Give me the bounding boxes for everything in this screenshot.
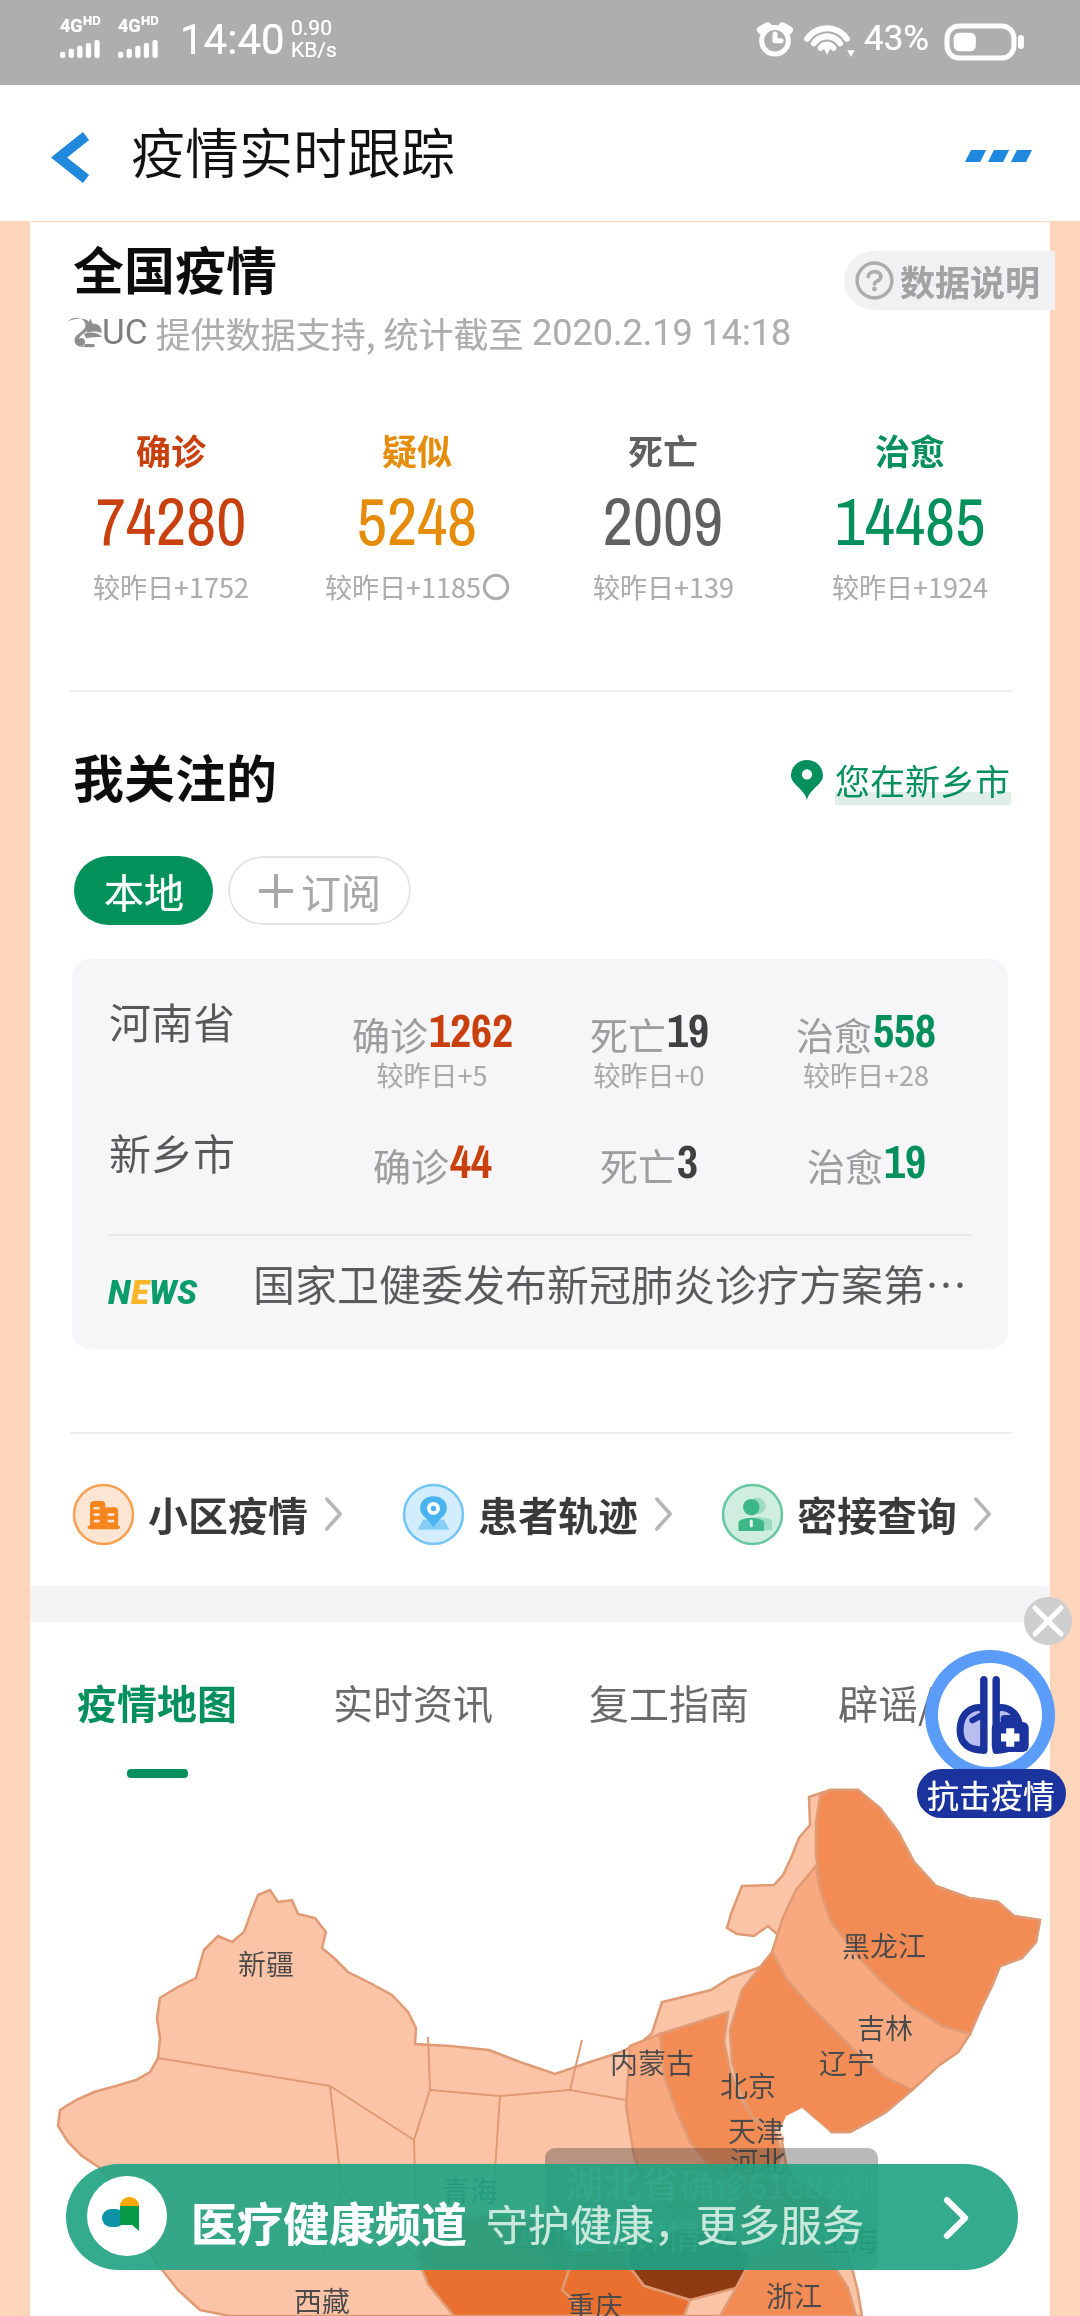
staticText: 较昨日+0 xyxy=(539,1055,759,1094)
staticText: 订阅 xyxy=(301,862,381,920)
staticText: HD xyxy=(141,13,159,28)
button[interactable]: 患者轨迹 xyxy=(403,1483,672,1545)
staticText: 死亡 xyxy=(590,1006,667,1061)
staticText: 74280 xyxy=(51,477,291,566)
staticText: 确诊 xyxy=(51,424,291,475)
staticText: 治愈 xyxy=(790,424,1030,475)
staticText: 确诊 xyxy=(352,1006,429,1061)
staticText: 1262 xyxy=(429,999,513,1061)
staticText: 提供数据支持, 统计截至 xyxy=(148,307,532,358)
staticText: 14:40 xyxy=(180,15,285,64)
staticText: 疑似 xyxy=(297,424,537,475)
staticText: 抗击疫情 xyxy=(927,1771,1056,1817)
staticText: 较昨日+28 xyxy=(756,1055,976,1094)
staticText: 浙江 xyxy=(714,2275,874,2316)
staticText: 0.90 xyxy=(291,16,332,41)
staticText: 44 xyxy=(450,1130,492,1192)
button[interactable]: 实时资讯 xyxy=(333,1673,493,1731)
staticText: 19 xyxy=(884,1130,926,1192)
staticText: N xyxy=(108,1273,131,1312)
staticText: 河北 xyxy=(678,2140,838,2181)
staticText: 4G xyxy=(60,15,83,36)
staticText: 14485 xyxy=(790,477,1030,566)
staticText: 小区疫情 xyxy=(148,1485,308,1543)
staticText: 国家卫健委发布新冠肺炎诊疗方案第… xyxy=(253,1252,1008,1313)
staticText: 上海 xyxy=(770,2220,930,2261)
staticText: 较昨日+5 xyxy=(322,1055,542,1094)
staticText: 天津 xyxy=(676,2110,836,2151)
staticText: 内蒙古 xyxy=(572,2042,732,2083)
staticText: 558 xyxy=(873,999,936,1061)
staticText: 查看详情 xyxy=(565,2210,701,2259)
staticText: 辟谣/求 xyxy=(838,1673,974,1731)
staticText: 辽宁 xyxy=(767,2042,927,2083)
button[interactable]: 复工指南 xyxy=(589,1673,749,1731)
button[interactable]: 小区疫情 xyxy=(73,1483,342,1545)
button[interactable]: 订阅 xyxy=(228,856,411,925)
staticText: 疫情实时跟踪 xyxy=(131,111,455,189)
staticText: 疫情地图 xyxy=(77,1673,237,1731)
button[interactable]: 河南省 xyxy=(72,959,1008,1349)
staticText: W xyxy=(149,1273,177,1312)
staticText: 全国疫情 xyxy=(73,231,278,305)
staticText: 复工指南 xyxy=(589,1673,749,1731)
staticText: 河南省 xyxy=(109,990,236,1051)
staticText: 我关注的 xyxy=(73,739,278,813)
staticText: 较昨日+1924 xyxy=(832,567,988,606)
staticText: UC xyxy=(102,312,148,353)
staticText: 新疆 xyxy=(186,1943,346,1984)
button[interactable]: 您在新乡市 xyxy=(791,754,1011,805)
staticText: 治愈 xyxy=(807,1137,884,1192)
button[interactable]: 密接查询 xyxy=(722,1483,991,1545)
staticText: 较昨日+1185 xyxy=(325,567,481,606)
staticText: 患者轨迹 xyxy=(478,1485,638,1543)
button[interactable]: 数据说明 xyxy=(844,251,1055,310)
staticText: 较昨日+1752 xyxy=(93,567,249,606)
staticText: 北京 xyxy=(668,2065,828,2106)
staticText: 确诊61682例 xyxy=(680,2160,877,2209)
staticText: 密接查询 xyxy=(797,1485,957,1543)
button[interactable]: 医疗健康频道 xyxy=(66,2164,1018,2270)
staticText: 守护健康，更多服务 xyxy=(486,2192,865,2253)
staticText: 青海 xyxy=(390,2170,550,2211)
staticText: 黑龙江 xyxy=(804,1925,964,1966)
staticText: E xyxy=(131,1273,149,1312)
staticText: 19 xyxy=(667,999,709,1061)
staticText: 数据说明 xyxy=(900,255,1041,306)
staticText: S xyxy=(177,1273,198,1312)
staticText: 死亡 xyxy=(543,424,783,475)
staticText: 重庆 xyxy=(515,2285,675,2316)
staticText: 吉林 xyxy=(805,2007,965,2048)
staticText: HD xyxy=(83,13,101,28)
staticText: 较昨日+139 xyxy=(593,567,734,606)
staticText: 本地 xyxy=(104,862,184,920)
button[interactable]: More options xyxy=(953,113,1039,199)
staticText: 湖北 xyxy=(630,2225,790,2266)
button[interactable]: 抗击疫情 xyxy=(917,1650,1067,1818)
staticText: 5248 xyxy=(297,477,537,566)
staticText: 2009 xyxy=(543,477,783,566)
staticText: 新乡市 xyxy=(109,1121,236,1182)
staticText: 四川 xyxy=(458,2217,618,2258)
staticText: 43% xyxy=(864,18,929,59)
button[interactable]: 疫情地图 xyxy=(77,1673,237,1778)
button[interactable]: 辟谣/求 xyxy=(838,1673,974,1731)
staticText: 确诊 xyxy=(373,1137,450,1192)
button[interactable]: Close xyxy=(1024,1597,1072,1645)
staticText: 医疗健康频道 xyxy=(191,2188,467,2255)
staticText: 3 xyxy=(677,1130,698,1192)
staticText: KB/s xyxy=(291,38,337,63)
staticText: 死亡 xyxy=(600,1137,677,1192)
button[interactable]: Back xyxy=(32,117,112,197)
staticText: 2020.2.19 14:18 xyxy=(532,312,792,354)
button[interactable]: 本地 xyxy=(74,856,213,925)
staticText: 4G xyxy=(118,15,141,36)
staticText: 西藏 xyxy=(242,2280,402,2316)
staticText: 湖北省 xyxy=(565,2154,680,2209)
staticText: 您在新乡市 xyxy=(835,754,1011,805)
staticText: 治愈 xyxy=(796,1006,873,1061)
staticText: 实时资讯 xyxy=(333,1673,493,1731)
